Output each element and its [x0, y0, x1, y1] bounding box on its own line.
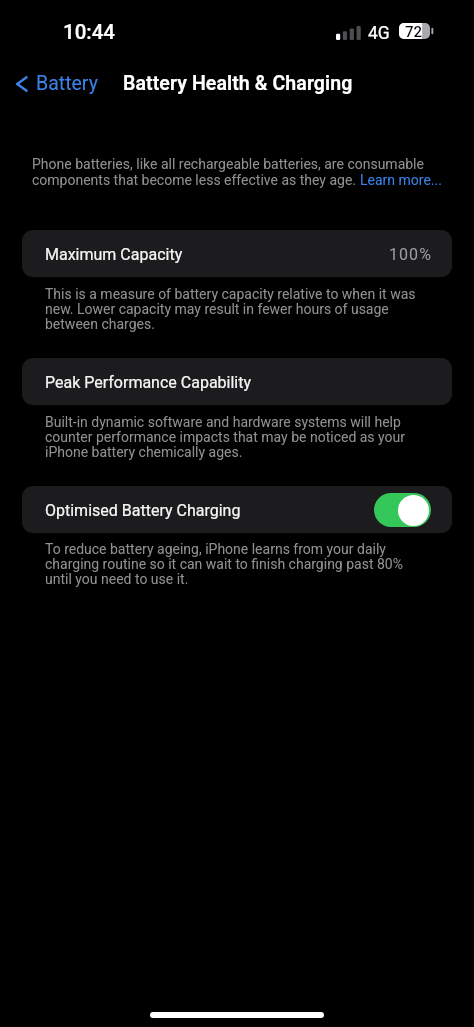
staticText: 4G: [368, 23, 390, 44]
button[interactable]: Back to Battery: [12, 70, 98, 96]
other: Cellular signal: [336, 25, 361, 40]
staticText: Optimised Battery Charging: [45, 501, 241, 520]
staticText: 72: [405, 23, 423, 39]
staticText: Phone batteries, like all rechargeable b…: [32, 156, 424, 172]
button[interactable]: Optimised Battery Charging, on: [374, 493, 431, 527]
staticText: components that become less effective as…: [32, 172, 360, 188]
button[interactable]: Peak Performance Capability: [22, 358, 452, 405]
staticText: Maximum Capacity: [45, 245, 183, 264]
button[interactable]: Learn more...: [360, 172, 442, 188]
staticText: 10:44: [63, 20, 116, 44]
staticText: Peak Performance Capability: [45, 373, 252, 392]
button[interactable]: Maximum Capacity: [22, 230, 452, 277]
staticText: Battery: [36, 72, 98, 95]
staticText: 100%: [389, 245, 432, 264]
staticText: This is a measure of battery capacity re…: [45, 286, 425, 332]
staticText: Built-in dynamic software and hardware s…: [45, 414, 425, 460]
staticText: Battery Health & Charging: [123, 72, 353, 95]
button[interactable]: Optimised Battery Charging: [22, 486, 452, 533]
other: Battery 72 percent: [399, 23, 433, 39]
staticText: To reduce battery ageing, iPhone learns …: [45, 541, 425, 587]
